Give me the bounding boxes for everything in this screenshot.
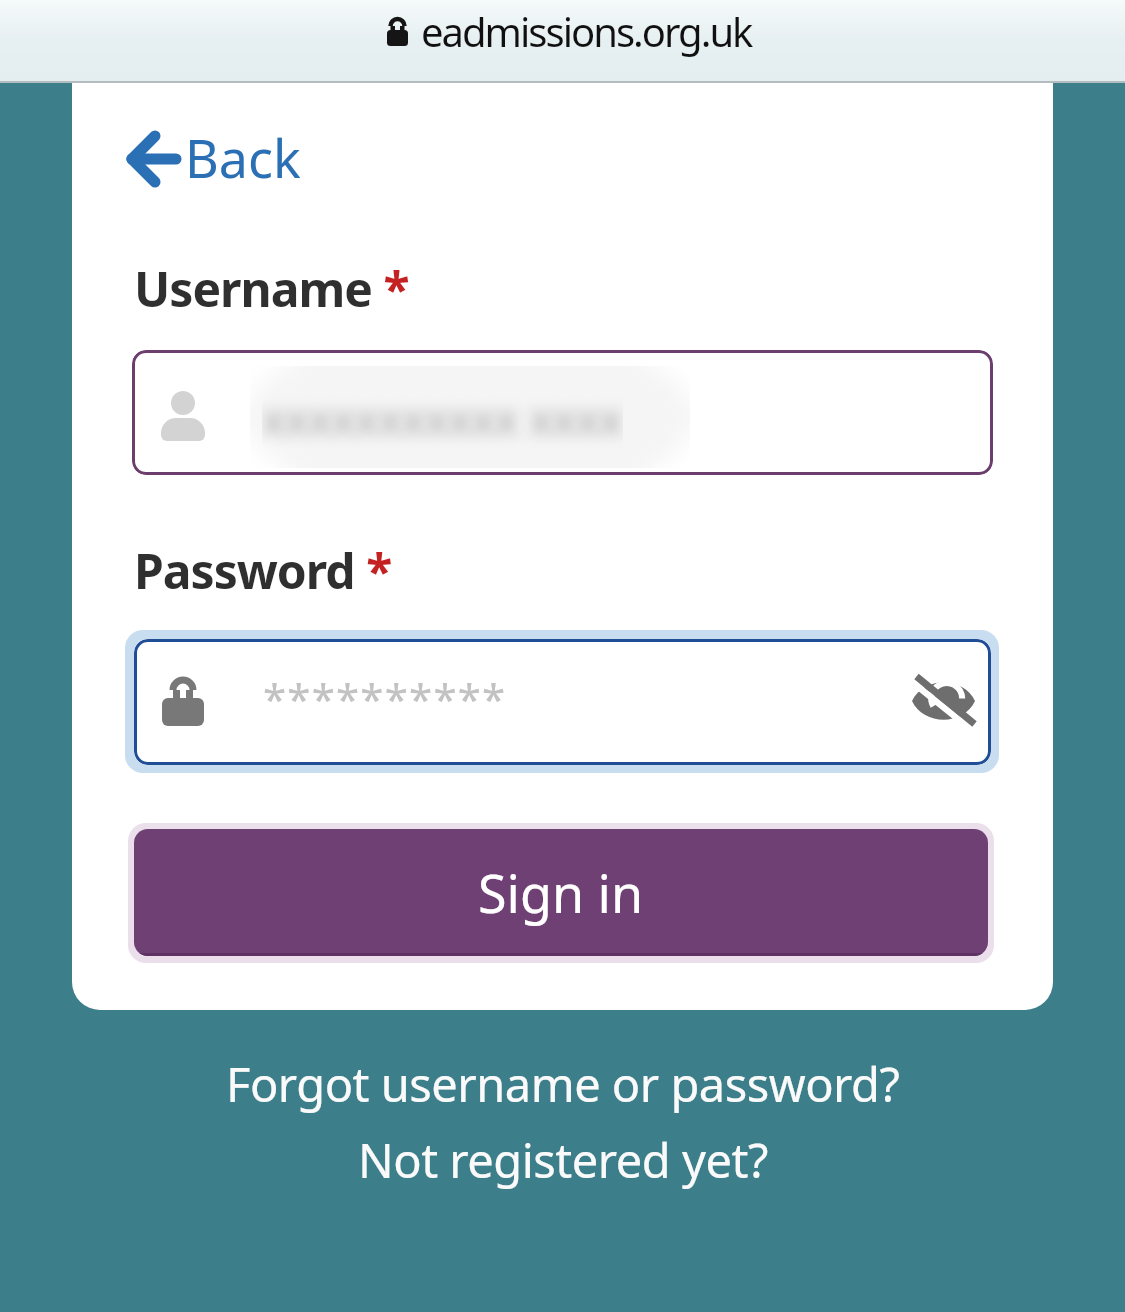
button[interactable] xyxy=(134,639,991,765)
staticText: xxxxxxxxxxx xxxx xyxy=(262,388,623,448)
staticText: Username * xyxy=(134,256,409,321)
staticText: Back xyxy=(185,122,301,193)
staticText: eadmissions.org.uk xyxy=(421,4,752,58)
staticText: Password * xyxy=(134,538,392,603)
staticText: Sign in xyxy=(478,857,644,928)
button[interactable]: Not registered yet? xyxy=(358,1128,768,1192)
button[interactable]: Sign in xyxy=(134,829,988,956)
staticText: ********** xyxy=(263,670,507,727)
button[interactable] xyxy=(132,350,993,475)
button[interactable]: Back xyxy=(126,122,301,193)
button[interactable]: Forgot username or password? xyxy=(226,1052,900,1116)
